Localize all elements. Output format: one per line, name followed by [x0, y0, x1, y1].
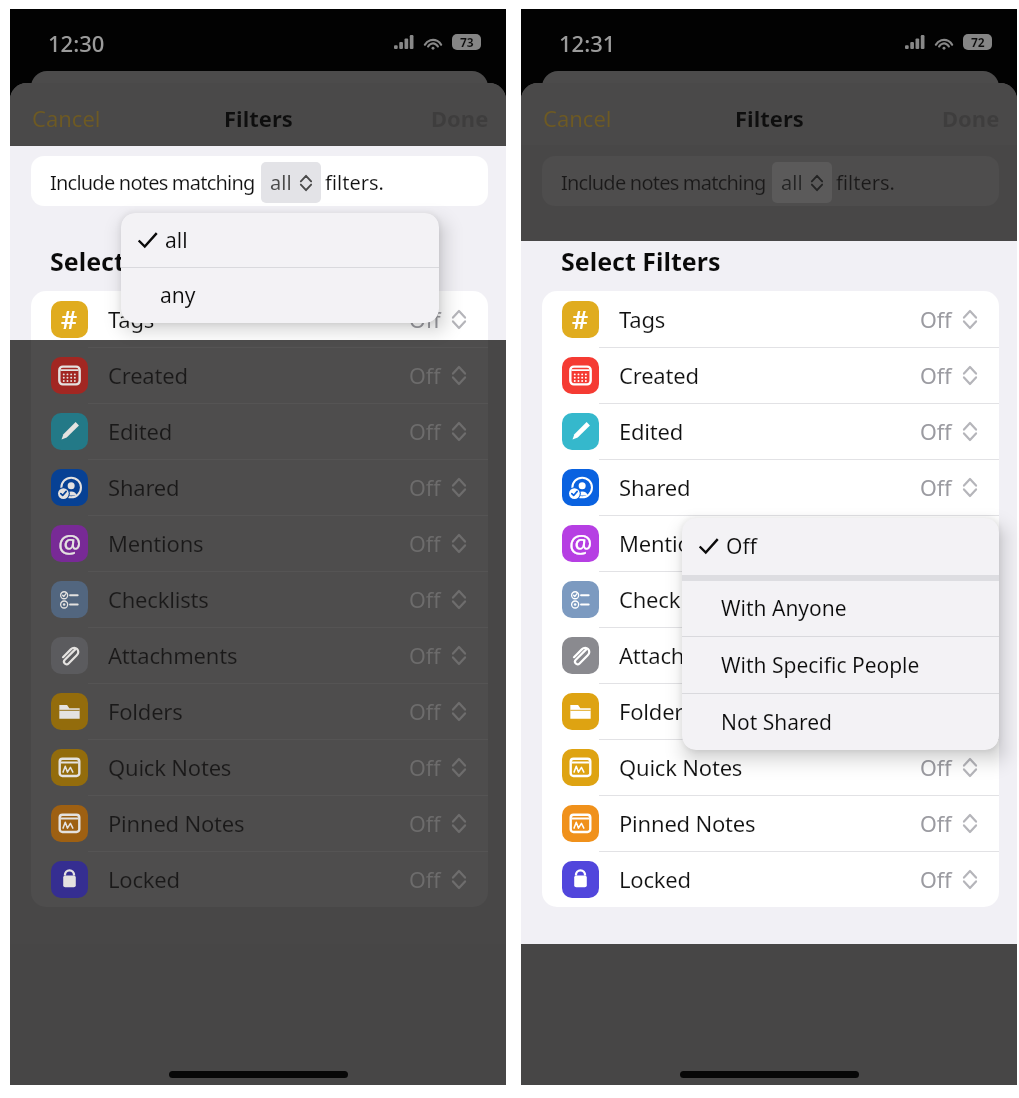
button[interactable]: @ — [31, 515, 488, 571]
button[interactable]: Cancel — [32, 87, 132, 149]
button[interactable]: Locked — [542, 851, 999, 907]
staticText: any — [160, 281, 196, 310]
button[interactable]: Checklists — [542, 571, 999, 627]
button[interactable]: all — [772, 162, 832, 203]
staticText: Off — [409, 753, 441, 782]
staticText: Tags — [108, 304, 155, 334]
button[interactable]: @ — [542, 515, 999, 571]
button[interactable]: Attachments — [542, 627, 999, 683]
staticText: Filters — [224, 103, 293, 133]
button[interactable]: Locked — [542, 851, 999, 907]
button[interactable]: # — [542, 291, 999, 347]
staticText: Off — [409, 641, 441, 670]
staticText: Off — [409, 809, 441, 838]
button[interactable]: Created — [31, 347, 488, 403]
button[interactable]: Pinned Notes — [31, 795, 488, 851]
staticText: With Specific People — [721, 651, 920, 680]
button[interactable]: any — [121, 268, 439, 323]
staticText: Off — [409, 473, 441, 502]
button[interactable]: Shared — [31, 459, 488, 515]
button[interactable]: With Anyone — [682, 581, 999, 636]
staticText: Edited — [619, 416, 684, 446]
staticText: Attachments — [108, 640, 238, 670]
staticText: Quick Notes — [619, 752, 743, 782]
staticText: # — [61, 302, 78, 336]
button[interactable]: all — [772, 162, 832, 203]
button[interactable]: Shared — [542, 459, 999, 515]
staticText: Off — [920, 417, 952, 446]
button[interactable]: Pinned Notes — [31, 795, 488, 851]
staticText: Off — [920, 361, 952, 390]
button[interactable]: # — [542, 291, 999, 347]
staticText: Shared — [619, 472, 691, 502]
button[interactable]: Pinned Notes — [542, 795, 999, 851]
staticText: all — [270, 169, 292, 196]
staticText: Done — [942, 103, 1000, 133]
button[interactable]: Folders — [31, 683, 488, 739]
staticText: Mentions — [108, 528, 204, 558]
button[interactable]: @ — [31, 515, 488, 571]
staticText: Include notes matching — [561, 169, 766, 196]
button[interactable]: Checklists — [31, 571, 488, 627]
staticText: filters. — [836, 169, 895, 196]
button[interactable]: @ — [542, 515, 999, 571]
button[interactable]: Created — [31, 347, 488, 403]
staticText: Off — [409, 529, 441, 558]
button[interactable]: Edited — [542, 403, 999, 459]
button[interactable]: Locked — [31, 851, 488, 907]
staticText: # — [61, 302, 78, 336]
staticText: Tags — [108, 304, 155, 334]
button[interactable]: # — [31, 291, 488, 347]
staticText: 12:31 — [559, 28, 616, 58]
button[interactable]: Edited — [542, 403, 999, 459]
button[interactable]: all — [261, 162, 321, 203]
button[interactable]: With Specific People — [682, 637, 999, 693]
staticText: Off — [920, 753, 952, 782]
button[interactable]: Checklists — [31, 571, 488, 627]
button[interactable]: Cancel — [543, 87, 643, 149]
button[interactable]: Attachments — [542, 627, 999, 683]
button[interactable]: Quick Notes — [31, 739, 488, 795]
button[interactable]: Folders — [31, 683, 488, 739]
button[interactable]: Edited — [31, 403, 488, 459]
button[interactable]: Folders — [542, 683, 999, 739]
button[interactable]: Quick Notes — [542, 739, 999, 795]
staticText: Off — [409, 585, 441, 614]
button[interactable]: Attachments — [31, 627, 488, 683]
button[interactable]: Cancel — [32, 87, 132, 149]
staticText: Select Filters — [561, 244, 721, 278]
staticText: @ — [569, 525, 593, 560]
button[interactable]: Locked — [31, 851, 488, 907]
button[interactable]: all — [261, 162, 321, 203]
staticText: Locked — [619, 864, 691, 894]
staticText: Include notes matching — [50, 169, 255, 196]
button[interactable]: Quick Notes — [542, 739, 999, 795]
button[interactable]: Pinned Notes — [542, 795, 999, 851]
button[interactable]: Created — [542, 347, 999, 403]
button[interactable]: Off — [682, 518, 999, 575]
button[interactable]: Done — [409, 87, 489, 149]
button[interactable]: Shared — [542, 459, 999, 515]
button[interactable]: Not Shared — [682, 694, 999, 750]
button[interactable]: Attachments — [31, 627, 488, 683]
button[interactable]: all — [121, 213, 439, 267]
button[interactable]: Shared — [31, 459, 488, 515]
button[interactable]: Cancel — [543, 87, 643, 149]
staticText: Done — [942, 103, 1000, 133]
staticText: Tags — [619, 304, 666, 334]
staticText: Off — [409, 753, 441, 782]
button[interactable]: Done — [409, 87, 489, 149]
button[interactable]: Folders — [542, 683, 999, 739]
button[interactable]: Edited — [31, 403, 488, 459]
button[interactable]: Checklists — [542, 571, 999, 627]
staticText: # — [572, 302, 589, 336]
button[interactable]: Quick Notes — [31, 739, 488, 795]
button[interactable]: Created — [542, 347, 999, 403]
button[interactable]: # — [31, 291, 488, 347]
staticText: Select Filters — [50, 244, 210, 278]
